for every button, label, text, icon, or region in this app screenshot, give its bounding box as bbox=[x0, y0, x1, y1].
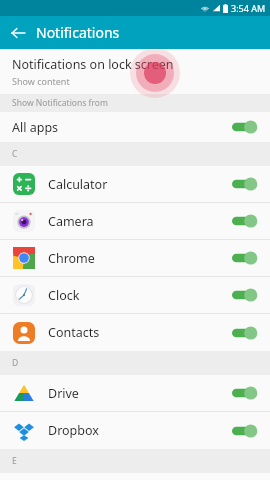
staticText: Show Notifications from bbox=[12, 97, 108, 109]
button[interactable]: Toggle bbox=[232, 386, 258, 400]
staticText: Notifications on lock screen bbox=[12, 56, 174, 73]
button[interactable]: Chrome bbox=[0, 240, 270, 276]
staticText: Contacts bbox=[48, 324, 232, 341]
staticText: Drive bbox=[48, 385, 232, 402]
button[interactable]: Toggle bbox=[232, 251, 258, 265]
button[interactable]: Toggle bbox=[232, 288, 258, 302]
button[interactable]: Clock bbox=[0, 277, 270, 313]
button[interactable]: Toggle bbox=[232, 214, 258, 228]
button[interactable]: Contacts bbox=[0, 314, 270, 351]
staticText: Camera bbox=[48, 213, 232, 230]
staticText: Show content bbox=[12, 75, 70, 87]
button[interactable]: Dropbox bbox=[0, 412, 270, 449]
button[interactable]: Toggle bbox=[232, 326, 258, 340]
button[interactable]: All apps bbox=[0, 112, 270, 142]
staticText: Dropbox bbox=[48, 422, 232, 439]
button[interactable]: Toggle bbox=[232, 177, 258, 191]
staticText: Chrome bbox=[48, 250, 232, 267]
button[interactable]: Back bbox=[6, 21, 30, 45]
staticText: All apps bbox=[12, 119, 232, 136]
staticText: E bbox=[12, 455, 17, 467]
button[interactable]: Notifications on lock screen bbox=[0, 49, 270, 94]
staticText: Calculator bbox=[48, 176, 232, 193]
staticText: 3:54 AM bbox=[231, 2, 266, 14]
button[interactable]: Calculator bbox=[0, 166, 270, 202]
staticText: Notifications bbox=[36, 23, 120, 42]
button[interactable]: Toggle bbox=[232, 120, 258, 134]
button[interactable]: Drive bbox=[0, 375, 270, 411]
button[interactable]: Toggle bbox=[232, 424, 258, 438]
staticText: C bbox=[12, 148, 18, 160]
button[interactable]: Camera bbox=[0, 203, 270, 239]
staticText: D bbox=[12, 357, 19, 369]
staticText: Clock bbox=[48, 287, 232, 304]
